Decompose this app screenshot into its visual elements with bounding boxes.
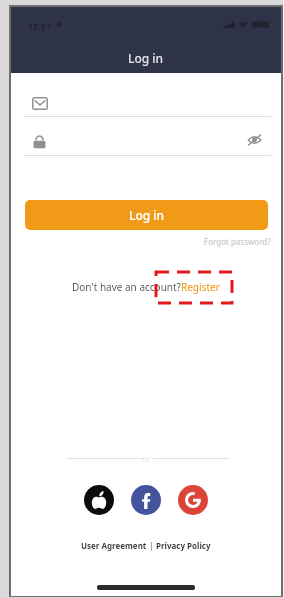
button[interactable]: Sign in with Apple: [84, 485, 114, 515]
button[interactable]: Email address field: [24, 91, 271, 117]
button[interactable]: Privacy Policy: [156, 535, 211, 556]
staticText: Don't have an account?: [72, 280, 181, 294]
staticText: Log in: [128, 50, 164, 66]
button[interactable]: Show password: [244, 130, 265, 151]
button[interactable]: User Agreement: [81, 535, 147, 556]
staticText: Privacy Policy: [156, 540, 211, 551]
staticText: |: [147, 540, 156, 551]
button[interactable]: Sign in with Facebook: [131, 485, 161, 515]
button[interactable]: Forgot password?: [196, 230, 279, 253]
button[interactable]: Password field: [24, 130, 239, 156]
button[interactable]: Register: [181, 276, 220, 298]
staticText: Register: [181, 280, 220, 294]
staticText: Log in: [129, 207, 165, 223]
staticText: User Agreement: [81, 540, 147, 551]
button[interactable]: Log in: [25, 200, 268, 230]
staticText: 15:51: [28, 20, 52, 32]
staticText: Forgot password?: [204, 236, 271, 247]
button[interactable]: Sign in with Google: [178, 485, 208, 515]
staticText: or: [142, 453, 151, 464]
